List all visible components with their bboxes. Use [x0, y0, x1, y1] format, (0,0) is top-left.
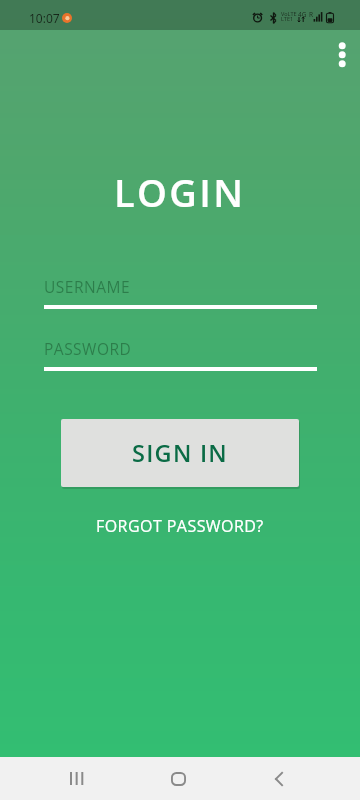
staticText: VoLTE	[281, 10, 297, 17]
staticText: LTE1	[281, 15, 294, 22]
staticText: R	[309, 10, 314, 19]
staticText: FORGOT PASSWORD?	[96, 515, 264, 537]
staticText: LOGIN	[114, 166, 246, 218]
button[interactable]: Home	[154, 757, 202, 800]
staticText: PASSWORD	[44, 338, 132, 359]
button[interactable]: FORGOT PASSWORD?	[88, 511, 272, 541]
staticText: SIGN IN	[132, 437, 228, 469]
button[interactable]: Back	[255, 757, 303, 800]
staticText: 10:07	[29, 10, 60, 26]
button[interactable]: SIGN IN	[61, 419, 299, 487]
staticText: 4G	[298, 10, 307, 19]
button[interactable]: Recent apps	[53, 757, 101, 800]
staticText: USERNAME	[44, 276, 131, 297]
button[interactable]: More options	[318, 31, 360, 79]
